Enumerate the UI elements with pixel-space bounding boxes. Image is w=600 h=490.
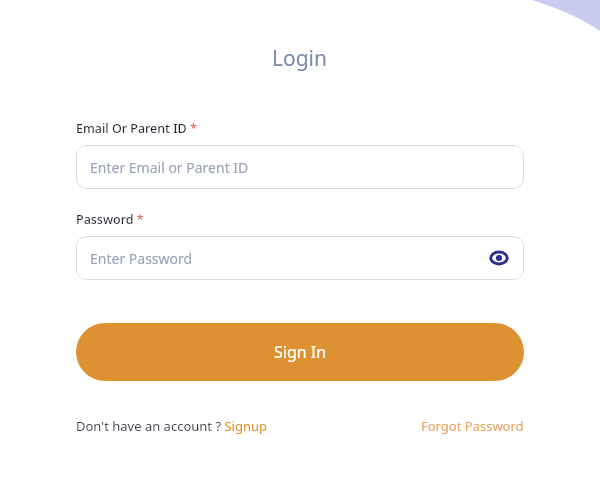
button[interactable]: Sign In [76, 323, 524, 381]
staticText: Password * [76, 211, 144, 228]
button[interactable]: Don't have an account ? Signup [76, 417, 267, 435]
button[interactable]: Forgot Password [421, 417, 524, 435]
staticText: Enter Email or Parent ID [90, 158, 249, 177]
button[interactable]: Enter Email or Parent ID [76, 145, 524, 189]
staticText: Don't have an account ? Signup [76, 417, 267, 435]
button[interactable]: Show password [488, 247, 510, 269]
staticText: Sign In [274, 341, 327, 363]
button[interactable]: Enter Password [76, 236, 524, 280]
staticText: Login [272, 44, 328, 73]
staticText: Forgot Password [421, 417, 524, 435]
staticText: Email Or Parent ID * [76, 120, 197, 137]
staticText: Enter Password [90, 249, 193, 268]
